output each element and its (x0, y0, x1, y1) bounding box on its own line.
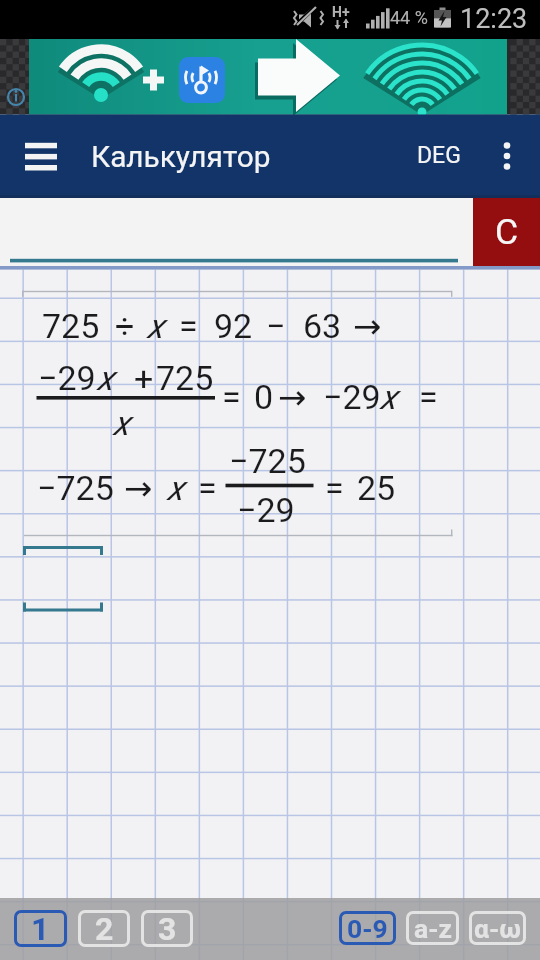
staticText: 92 (214, 306, 253, 346)
staticText: → (278, 377, 307, 417)
staticText: Калькулятор (91, 139, 271, 174)
staticText: a-z (414, 913, 452, 944)
button[interactable] (12, 132, 70, 182)
staticText: → (353, 306, 382, 346)
staticText: ÷ (115, 306, 135, 346)
staticText: 725 (42, 306, 100, 346)
staticText: 3 (158, 910, 177, 947)
button[interactable] (0, 198, 473, 266)
staticText: 63 (303, 306, 342, 346)
staticText: = (198, 468, 217, 508)
staticText: −29 (38, 358, 96, 398)
staticText: − (266, 306, 286, 346)
button[interactable]: 3 (141, 910, 193, 947)
button[interactable] (29, 39, 507, 114)
staticText: x (380, 377, 397, 417)
button[interactable]: α-ω (469, 911, 526, 945)
staticText: x (147, 306, 164, 346)
staticText: → (124, 468, 153, 508)
staticText: x (167, 468, 184, 508)
staticText: = (179, 306, 198, 346)
staticText: = (419, 377, 438, 417)
button[interactable] (488, 132, 528, 182)
button[interactable]: 1 (14, 910, 67, 947)
staticText: x (113, 403, 130, 443)
button[interactable] (405, 134, 473, 178)
staticText: 725 (156, 358, 214, 398)
staticText: −725 (229, 441, 306, 481)
staticText: 0 (254, 377, 274, 417)
button[interactable] (22, 291, 452, 536)
staticText: H+ (332, 4, 350, 20)
staticText: −29 (323, 377, 381, 417)
staticText: α-ω (474, 913, 521, 944)
staticText: 1 (31, 910, 50, 947)
staticText: C (495, 211, 519, 253)
staticText: 12:23 (460, 3, 528, 35)
staticText: DEG (417, 142, 461, 169)
button[interactable]: 2 (78, 910, 130, 947)
staticText: = (222, 377, 241, 417)
staticText: = (325, 468, 344, 508)
button[interactable]: C (473, 198, 540, 266)
staticText: −29 (237, 490, 295, 530)
staticText: −725 (37, 468, 114, 508)
button[interactable]: a-z (406, 911, 459, 945)
staticText: 2 (95, 910, 114, 947)
staticText: 0-9 (347, 913, 388, 944)
button[interactable]: 0-9 (339, 911, 396, 945)
staticText: + (134, 358, 154, 398)
staticText: x (97, 358, 114, 398)
staticText: 44 % (390, 7, 428, 28)
staticText: 25 (357, 468, 396, 508)
